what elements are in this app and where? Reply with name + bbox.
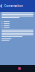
button[interactable]: Record [18,67,21,70]
button[interactable]: Back [0,0,3,12]
staticText: Conversation [4,4,23,8]
